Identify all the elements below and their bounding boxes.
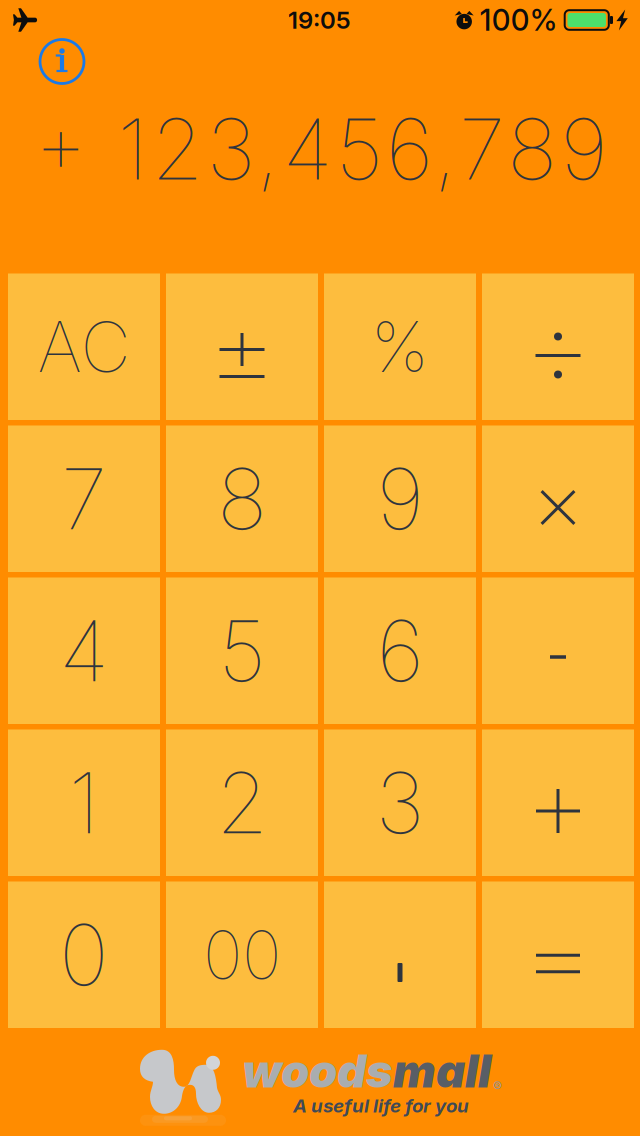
button[interactable]: 1 [8,729,160,876]
button[interactable] [482,577,634,724]
button[interactable] [482,729,634,876]
staticText: 1 [68,752,99,853]
staticText: AC [37,305,130,389]
staticText: 00 [203,914,281,995]
button[interactable]: 9 [324,425,476,572]
button[interactable]: % [324,273,476,420]
button[interactable]: 8 [166,425,318,572]
staticText: mall [393,1044,491,1098]
staticText: 4 [59,600,109,701]
button[interactable] [324,881,476,1028]
button[interactable]: 4 [8,577,160,724]
button[interactable]: 2 [166,729,318,876]
staticText: 5 [218,600,265,701]
staticText: woods [242,1044,393,1098]
button[interactable]: 6 [324,577,476,724]
button[interactable]: 5 [166,577,318,724]
button[interactable]: 0 [8,881,160,1028]
staticText: 100% [480,2,558,38]
button[interactable]: 3 [324,729,476,876]
staticText: 2 [216,752,268,853]
button[interactable]: Info [32,31,92,91]
staticText: ® [493,1078,502,1094]
staticText: + 123,456,789 [34,98,607,200]
button[interactable]: AC [8,273,160,420]
staticText: 0 [59,904,109,1005]
button[interactable] [482,881,634,1028]
staticText: 19:05 [288,5,351,34]
staticText: 3 [375,752,424,853]
button[interactable] [482,425,634,572]
button[interactable] [166,273,318,420]
staticText: 9 [376,448,423,549]
button[interactable]: 00 [166,881,318,1028]
staticText: 6 [376,600,423,701]
staticText: 8 [217,448,267,549]
button[interactable] [482,273,634,420]
staticText: 7 [61,448,107,549]
button[interactable]: 7 [8,425,160,572]
staticText: A useful life for you [293,1094,469,1117]
staticText: % [370,305,429,389]
